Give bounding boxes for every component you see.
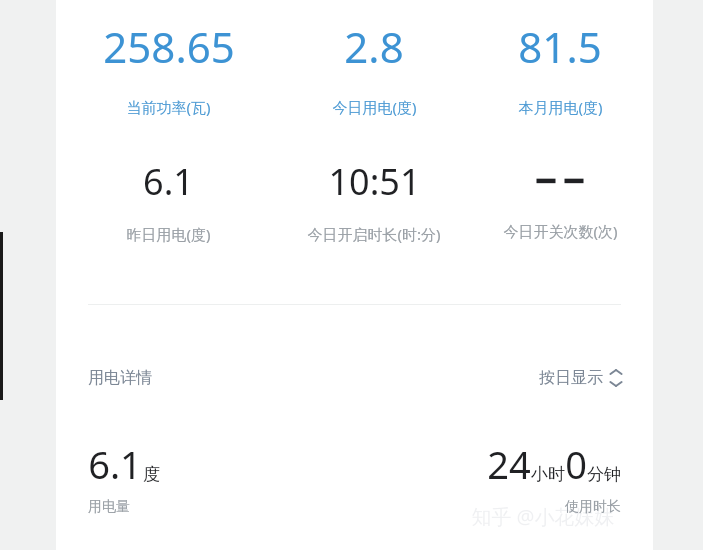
staticText: 258.65	[103, 18, 235, 75]
button[interactable]: 6.1	[88, 438, 160, 516]
staticText: 6.1	[143, 157, 194, 206]
staticText: 本月用电(度)	[518, 97, 603, 117]
staticText: 当前功率(瓦)	[126, 97, 211, 117]
staticText: 用电详情	[88, 368, 152, 388]
staticText: 用电量	[88, 498, 130, 516]
staticText: 今日用电(度)	[332, 97, 417, 117]
staticText: 10:51	[328, 157, 421, 206]
button[interactable]: 2.8	[281, 18, 467, 117]
button[interactable]: 6.1	[56, 157, 281, 244]
staticText: 81.5	[518, 18, 602, 75]
button[interactable]: 258.65	[56, 18, 281, 117]
staticText: 今日开关次数(次)	[503, 221, 618, 241]
staticText: 使用时长	[565, 498, 621, 516]
staticText: 小时	[531, 464, 565, 485]
staticText: 6.1	[88, 438, 142, 490]
button[interactable]: 81.5	[467, 18, 653, 117]
other: Change display period	[609, 368, 623, 388]
staticText: 0	[565, 438, 587, 490]
button[interactable]: No data	[467, 157, 653, 241]
staticText: 分钟	[587, 464, 621, 485]
button[interactable]: 用电详情	[88, 368, 152, 388]
staticText: 知乎 @小花妹妹	[471, 503, 615, 530]
staticText: 按日显示	[539, 368, 603, 388]
staticText: 昨日用电(度)	[126, 224, 211, 244]
staticText: 度	[143, 464, 160, 485]
staticText: 2.8	[344, 18, 404, 75]
staticText: 24	[487, 438, 531, 490]
button[interactable]: 按日显示	[539, 368, 623, 388]
staticText: 今日开启时长(时:分)	[307, 224, 441, 244]
button[interactable]: 24	[446, 438, 621, 516]
other: No data	[530, 157, 590, 203]
button[interactable]: 10:51	[281, 157, 467, 244]
